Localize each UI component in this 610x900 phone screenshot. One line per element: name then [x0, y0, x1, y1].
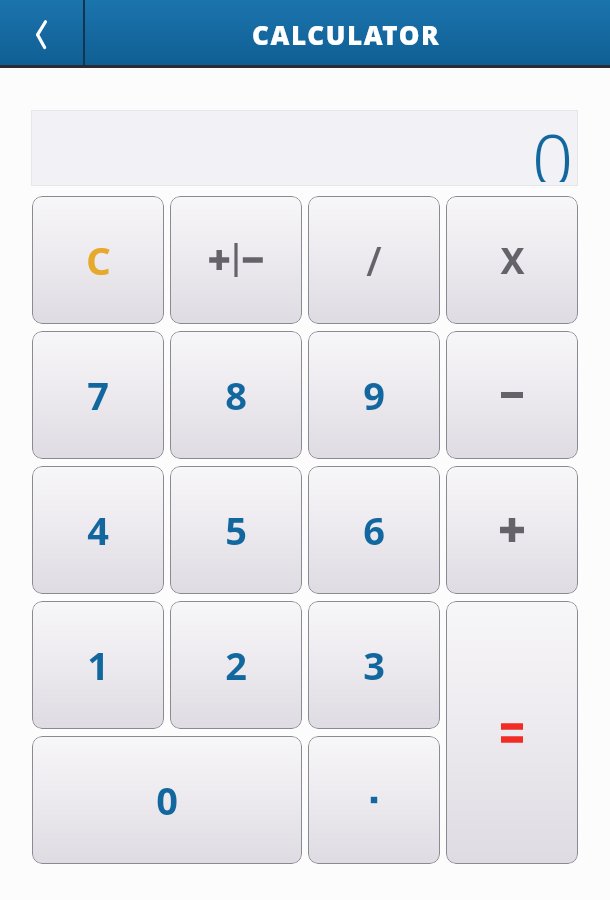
- button[interactable]: Plus: [446, 466, 578, 594]
- staticText: 6: [363, 504, 385, 556]
- staticText: C: [86, 234, 111, 286]
- staticText: 3: [363, 639, 385, 691]
- button[interactable]: /: [308, 196, 440, 324]
- button[interactable]: Minus: [446, 331, 578, 459]
- button[interactable]: 9: [308, 331, 440, 459]
- button[interactable]: 6: [308, 466, 440, 594]
- staticText: 8: [225, 369, 247, 421]
- button[interactable]: Plus minus sign toggle: [170, 196, 302, 324]
- staticText: 7: [87, 369, 109, 421]
- staticText: CALCULATOR: [252, 17, 441, 52]
- button[interactable]: 2: [170, 601, 302, 729]
- button[interactable]: Decimal point: [308, 736, 440, 864]
- button[interactable]: C: [32, 196, 164, 324]
- button[interactable]: 3: [308, 601, 440, 729]
- staticText: /: [366, 233, 382, 287]
- button[interactable]: X: [446, 196, 578, 324]
- button[interactable]: 4: [32, 466, 164, 594]
- button[interactable]: 8: [170, 331, 302, 459]
- staticText: 4: [87, 504, 109, 556]
- button[interactable]: Equals: [446, 601, 578, 864]
- staticText: 2: [225, 639, 247, 691]
- staticText: 5: [225, 504, 247, 556]
- button[interactable]: Back: [0, 0, 83, 68]
- staticText: X: [500, 236, 525, 285]
- button[interactable]: 7: [32, 331, 164, 459]
- button[interactable]: 1: [32, 601, 164, 729]
- button[interactable]: 5: [170, 466, 302, 594]
- staticText: 1: [87, 639, 109, 691]
- button[interactable]: 0: [32, 736, 302, 864]
- staticText: 0: [156, 774, 178, 826]
- staticText: 9: [363, 369, 385, 421]
- staticText: 0: [532, 110, 574, 182]
